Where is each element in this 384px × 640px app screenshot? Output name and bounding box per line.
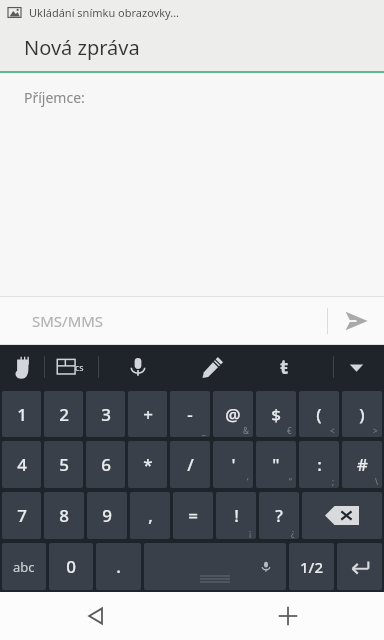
button[interactable]: 4	[2, 441, 41, 488]
staticText: 9	[102, 504, 112, 527]
staticText: '	[231, 453, 236, 476]
staticText: 7	[17, 504, 27, 527]
staticText: 2	[59, 403, 69, 426]
button[interactable]: Voice input	[116, 345, 160, 389]
button[interactable]: *	[128, 441, 167, 488]
button[interactable]: Handwriting	[0, 345, 44, 389]
staticText: :	[317, 453, 322, 476]
staticText: -	[187, 403, 193, 426]
button[interactable]: 1	[2, 391, 41, 437]
button[interactable]: 8	[44, 492, 84, 539]
staticText: $	[271, 403, 281, 426]
button[interactable]: =	[173, 492, 213, 539]
staticText: ¡	[249, 527, 252, 538]
button[interactable]: 5	[44, 441, 83, 488]
button[interactable]: #	[342, 441, 382, 488]
button[interactable]: +	[128, 391, 167, 437]
button[interactable]: Příjemce:	[0, 73, 384, 121]
staticText: 0	[66, 555, 76, 578]
staticText: &	[243, 425, 249, 436]
button[interactable]: 9	[87, 492, 127, 539]
button[interactable]: SMS/MMS	[0, 297, 327, 344]
button[interactable]: 1/2	[289, 543, 334, 590]
staticText: abc	[13, 558, 35, 576]
staticText: <	[330, 425, 335, 436]
button[interactable]: Language	[266, 349, 302, 385]
button[interactable]: Enter	[337, 543, 382, 590]
staticText: 3	[101, 403, 111, 426]
button[interactable]: 6	[86, 441, 125, 488]
staticText: \	[375, 476, 378, 487]
staticText: @	[225, 403, 241, 426]
button[interactable]: Keyboard layout	[45, 345, 89, 389]
staticText: ¿	[291, 527, 295, 538]
staticText: Příjemce:	[24, 88, 85, 107]
staticText: ,	[148, 504, 153, 527]
button[interactable]: Add	[192, 592, 384, 640]
staticText: *	[143, 453, 153, 476]
staticText: 6	[101, 453, 111, 476]
staticText: Nová zpráva	[24, 34, 140, 61]
button[interactable]: /	[170, 441, 210, 488]
button[interactable]: "	[256, 441, 296, 488]
button[interactable]: ?	[259, 492, 299, 539]
button[interactable]: -	[170, 391, 210, 437]
staticText: Ukládání snímku obrazovky...	[29, 5, 180, 20]
staticText: ?	[275, 504, 283, 527]
staticText: €	[287, 425, 292, 436]
button[interactable]: 3	[86, 391, 125, 437]
staticText: “	[289, 476, 292, 487]
button[interactable]: @	[213, 391, 253, 437]
staticText: (	[316, 403, 322, 426]
staticText: 8	[59, 504, 69, 527]
staticText: cs	[75, 361, 84, 373]
staticText: >	[373, 425, 378, 436]
button[interactable]: 0	[49, 543, 93, 590]
button[interactable]: )	[342, 391, 382, 437]
button[interactable]: !	[216, 492, 256, 539]
staticText: 1/2	[300, 557, 323, 577]
staticText: =	[188, 504, 198, 527]
staticText: #	[357, 453, 368, 476]
button[interactable]: .	[96, 543, 141, 590]
staticText: ‘	[247, 476, 249, 487]
staticText: )	[359, 403, 365, 426]
button[interactable]: Draw	[191, 345, 235, 389]
staticText: 4	[17, 453, 27, 476]
button[interactable]: :	[299, 441, 339, 488]
staticText: ŧ	[280, 354, 289, 380]
staticText: /	[187, 453, 194, 476]
button[interactable]: Back	[0, 592, 192, 640]
button[interactable]: 2	[44, 391, 83, 437]
staticText: SMS/MMS	[32, 311, 104, 331]
button[interactable]: 7	[2, 492, 41, 539]
staticText: "	[272, 453, 280, 476]
button[interactable]: ,	[130, 492, 170, 539]
button[interactable]: '	[213, 441, 253, 488]
staticText: _	[202, 425, 206, 436]
staticText: 5	[59, 453, 69, 476]
button[interactable]: $	[256, 391, 296, 437]
button[interactable]: (	[299, 391, 339, 437]
staticText: !	[234, 504, 239, 527]
staticText: ;	[332, 476, 335, 487]
button[interactable]: Backspace	[302, 492, 382, 539]
staticText: .	[116, 555, 121, 578]
button[interactable]: Space	[144, 543, 286, 590]
button[interactable]: abc	[2, 543, 46, 590]
button[interactable]: Nová zpráva	[0, 24, 384, 71]
staticText: 1	[17, 403, 27, 426]
button[interactable]: Hide keyboard	[334, 345, 378, 389]
button[interactable]: Send	[328, 297, 384, 344]
staticText: +	[143, 403, 153, 426]
